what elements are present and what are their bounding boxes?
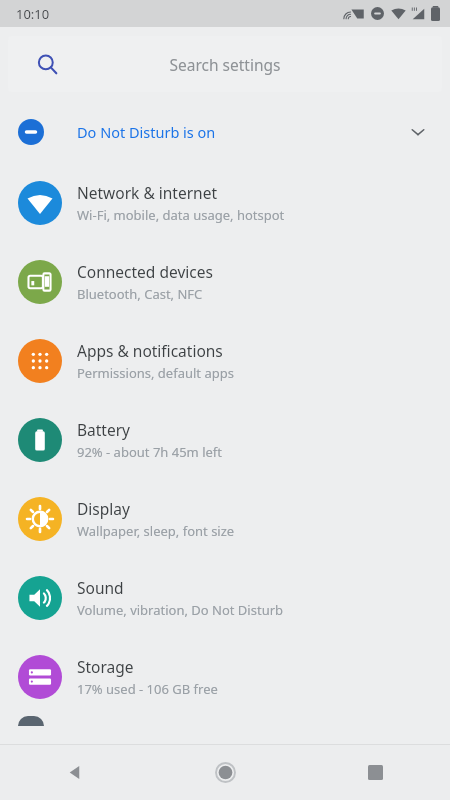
button[interactable]: Apps & notifications — [0, 321, 450, 400]
staticText: Connected devices — [77, 261, 213, 282]
staticText: Battery — [77, 419, 131, 440]
staticText: 10:10 — [16, 5, 50, 23]
other: Search — [34, 51, 60, 77]
button[interactable]: Search — [8, 36, 442, 92]
button[interactable]: Sound — [0, 558, 450, 637]
staticText: 17% used - 106 GB free — [77, 680, 218, 698]
staticText: Apps & notifications — [77, 340, 223, 361]
staticText: Wi-Fi, mobile, data usage, hotspot — [77, 206, 285, 224]
button[interactable]: Storage — [0, 637, 450, 716]
staticText: Do Not Disturb is on — [77, 122, 216, 142]
button[interactable]: Back — [0, 745, 150, 800]
button[interactable]: Home — [150, 745, 300, 800]
staticText: Display — [77, 498, 130, 519]
button[interactable] — [0, 716, 450, 726]
button[interactable]: Display — [0, 479, 450, 558]
button[interactable]: Network & internet — [0, 163, 450, 242]
button[interactable]: Connected devices — [0, 242, 450, 321]
staticText: Permissions, default apps — [77, 364, 234, 382]
button[interactable]: Battery — [0, 400, 450, 479]
staticText: Sound — [77, 577, 124, 598]
other: Expand — [398, 112, 438, 152]
staticText: Search settings — [8, 54, 442, 75]
button[interactable]: Recent apps — [300, 745, 450, 800]
staticText: 92% - about 7h 45m left — [77, 443, 222, 461]
staticText: Storage — [77, 656, 134, 677]
staticText: Wallpaper, sleep, font size — [77, 522, 235, 540]
staticText: Bluetooth, Cast, NFC — [77, 285, 203, 303]
button[interactable]: Do Not Disturb is on — [0, 100, 450, 163]
staticText: Network & internet — [77, 182, 217, 203]
staticText: Volume, vibration, Do Not Disturb — [77, 601, 284, 619]
